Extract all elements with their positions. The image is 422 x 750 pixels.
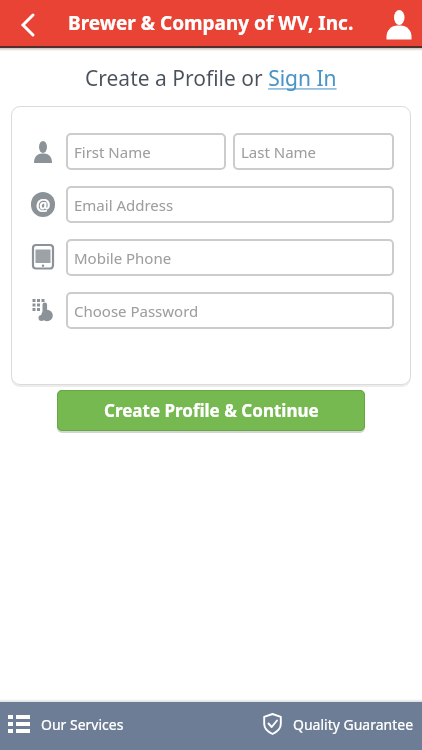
staticText: Last Name: [241, 142, 317, 162]
button[interactable]: [0, 0, 46, 46]
staticText: Mobile Phone: [74, 248, 172, 268]
staticText: @: [36, 194, 51, 216]
staticText: Email Address: [74, 195, 174, 215]
staticText: Brewer & Company of WV, Inc.: [68, 10, 354, 36]
staticText: Our Services: [41, 715, 124, 734]
button[interactable]: Last Name: [233, 133, 394, 170]
button[interactable]: Mobile Phone: [66, 239, 394, 276]
staticText: First Name: [74, 142, 151, 162]
button[interactable]: Create a Profile or Sign In: [85, 64, 337, 93]
button[interactable]: Choose Password: [66, 292, 394, 329]
button[interactable]: First Name: [66, 133, 226, 170]
button[interactable]: Our Services: [0, 700, 124, 748]
staticText: Choose Password: [74, 301, 199, 321]
staticText: Create Profile & Continue: [104, 399, 319, 422]
button[interactable]: [376, 0, 422, 46]
button[interactable]: Email Address: [66, 186, 394, 223]
button[interactable]: Quality Guarantee: [263, 700, 422, 748]
button[interactable]: Create Profile & Continue: [57, 390, 365, 431]
staticText: Quality Guarantee: [293, 715, 414, 734]
